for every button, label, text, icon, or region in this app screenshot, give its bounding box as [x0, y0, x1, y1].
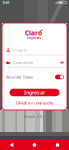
staticText: Contraseña: [12, 60, 32, 65]
button[interactable]: Aplicaciones recientes: [46, 140, 69, 150]
button[interactable]: Ingresar: [9, 89, 59, 96]
staticText: Recordar Datos: [6, 74, 33, 80]
staticText: Claro: [25, 28, 42, 37]
staticText: Usuario: [12, 47, 26, 53]
button[interactable]: Atrás: [0, 140, 23, 150]
staticText: Ingresar: [24, 89, 45, 96]
button[interactable]: Olvidé mi contraseña: [12, 100, 56, 105]
button[interactable]: Mostrar contraseña: [60, 61, 64, 64]
button[interactable]: Inicio: [23, 140, 46, 150]
staticText: empresas: [26, 36, 40, 40]
staticText: Olvidé mi contraseña: [16, 100, 53, 106]
staticText: 9:41: [2, 0, 9, 5]
button[interactable]: Recordar datos: [55, 75, 64, 79]
staticText: Versión 4.8.1: [24, 115, 45, 119]
